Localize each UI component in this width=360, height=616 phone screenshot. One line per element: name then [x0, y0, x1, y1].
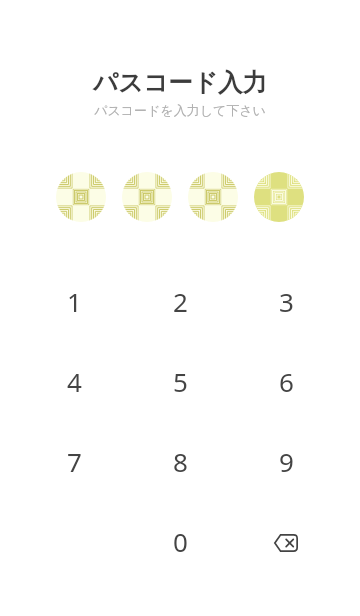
staticText: 4 — [67, 364, 82, 399]
button[interactable]: 0 — [127, 501, 233, 581]
staticText: 9 — [279, 444, 294, 479]
staticText: 5 — [173, 364, 188, 399]
other: Backspace — [274, 531, 298, 552]
button[interactable]: 5 — [127, 341, 233, 421]
staticText: 6 — [279, 364, 294, 399]
button[interactable]: 8 — [127, 421, 233, 501]
button[interactable]: 1 — [21, 261, 127, 341]
button[interactable]: Backspace — [233, 501, 339, 581]
button[interactable]: 6 — [233, 341, 339, 421]
button[interactable]: 2 — [127, 261, 233, 341]
staticText: 1 — [67, 284, 82, 319]
staticText: 7 — [67, 444, 82, 479]
button[interactable]: 9 — [233, 421, 339, 501]
staticText: パスコードを入力して下さい — [94, 102, 266, 118]
button[interactable]: 7 — [21, 421, 127, 501]
staticText: パスコード入力 — [93, 67, 267, 98]
staticText: 0 — [173, 524, 188, 559]
staticText: 3 — [279, 284, 294, 319]
staticText: 2 — [173, 284, 188, 319]
staticText: 8 — [173, 444, 188, 479]
button[interactable]: 3 — [233, 261, 339, 341]
button[interactable]: 4 — [21, 341, 127, 421]
